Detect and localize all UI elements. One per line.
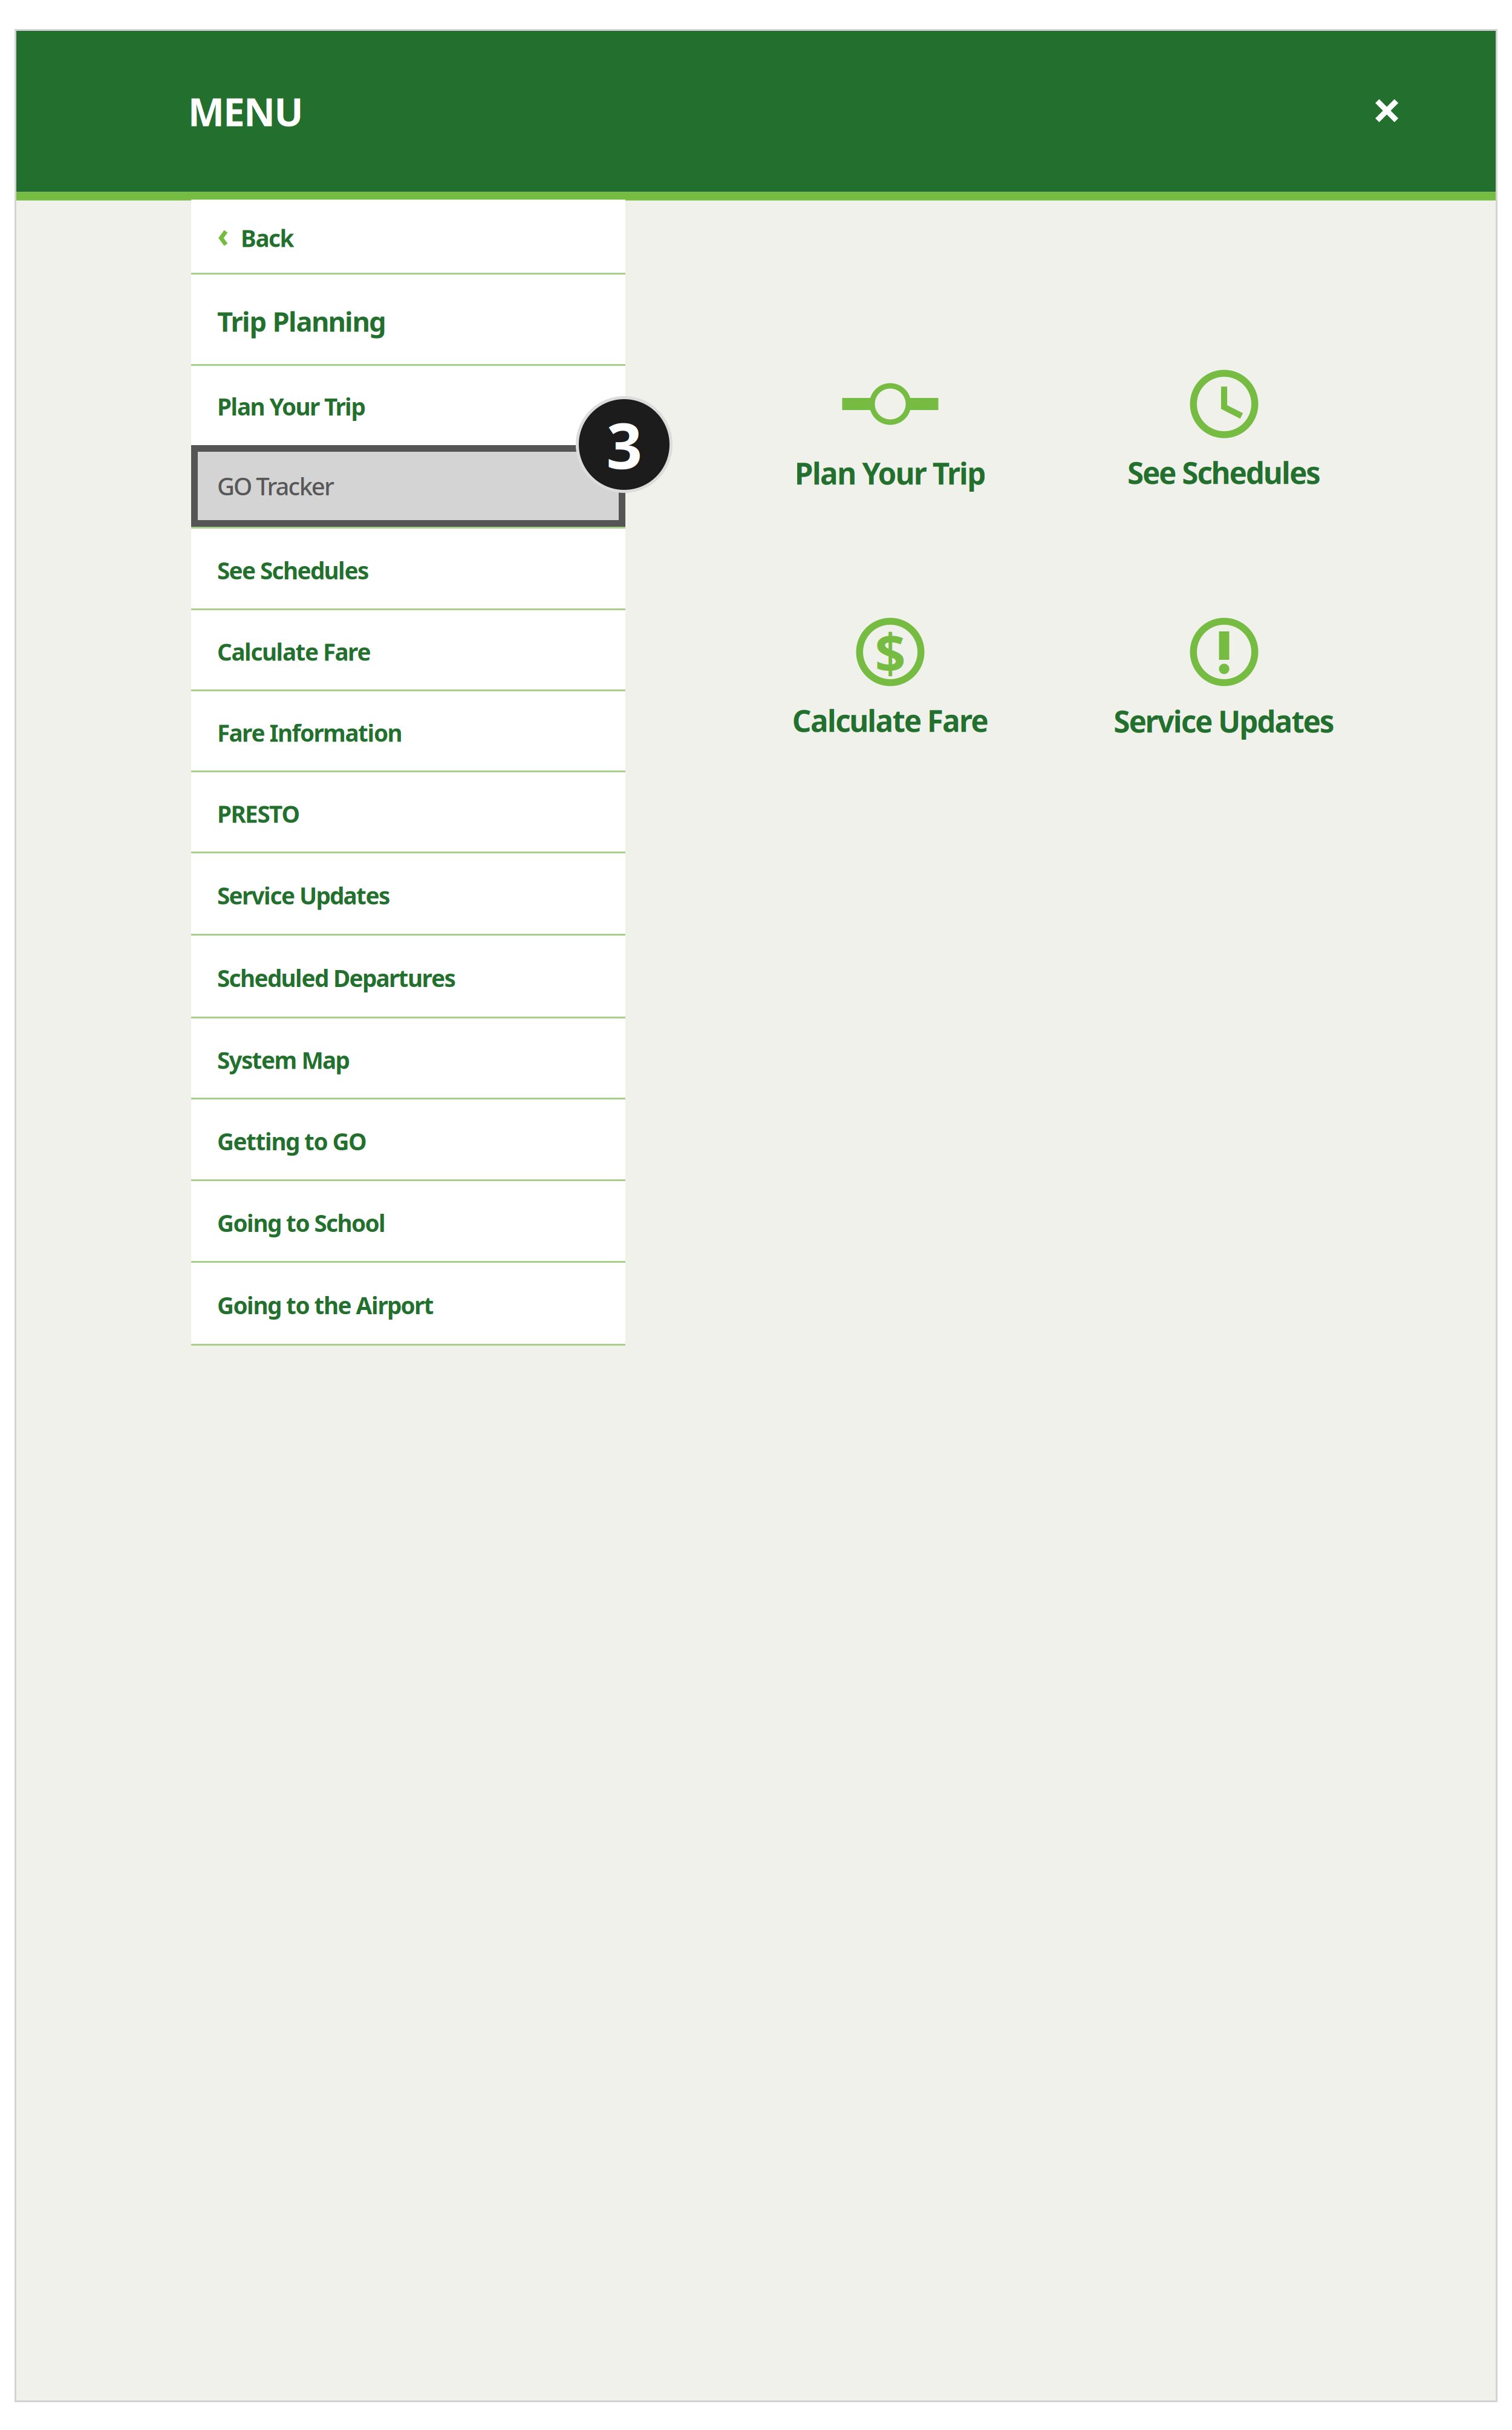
button[interactable]: Plan Your Trip: [733, 331, 1048, 489]
button[interactable]: Getting to GO: [191, 1099, 625, 1181]
button[interactable]: $: [733, 579, 1048, 737]
staticText: Going to School: [217, 1207, 386, 1238]
staticText: Service Updates: [1114, 701, 1335, 741]
staticText: 3: [606, 403, 642, 486]
staticText: See Schedules: [217, 555, 369, 586]
staticText: Trip Planning: [217, 303, 386, 339]
button[interactable]: Scheduled Departures: [191, 936, 625, 1018]
staticText: See Schedules: [1127, 452, 1321, 492]
staticText: PRESTO: [217, 798, 300, 829]
staticText: Scheduled Departures: [217, 962, 456, 993]
button[interactable]: Fare Information: [191, 691, 625, 772]
staticText: Plan Your Trip: [795, 453, 986, 493]
button[interactable]: Plan Your Trip: [191, 366, 625, 445]
button[interactable]: See Schedules: [191, 529, 625, 610]
staticText: GO Tracker: [217, 470, 334, 502]
button[interactable]: Close menu: [1351, 74, 1423, 147]
button[interactable]: System Map: [191, 1018, 625, 1099]
staticText: Calculate Fare: [792, 700, 988, 740]
button[interactable]: Back: [191, 200, 625, 275]
staticText: Fare Information: [217, 717, 402, 748]
staticText: Service Updates: [217, 880, 390, 911]
button[interactable]: Service Updates: [191, 853, 625, 936]
staticText: Back: [241, 222, 294, 253]
staticText: Getting to GO: [217, 1126, 367, 1157]
staticText: System Map: [217, 1044, 350, 1075]
button[interactable]: Service Updates: [1067, 579, 1381, 737]
staticText: Plan Your Trip: [217, 391, 366, 422]
button[interactable]: Going to School: [191, 1181, 625, 1263]
button[interactable]: GO Tracker: [191, 445, 625, 529]
staticText: Calculate Fare: [217, 636, 371, 667]
staticText: Going to the Airport: [217, 1290, 434, 1321]
staticText: MENU: [188, 86, 303, 137]
button[interactable]: Trip Planning: [191, 275, 625, 366]
button[interactable]: Going to the Airport: [191, 1263, 625, 1346]
button[interactable]: PRESTO: [191, 772, 625, 853]
button[interactable]: See Schedules: [1067, 331, 1381, 489]
button[interactable]: MENU: [155, 69, 336, 154]
staticText: $: [875, 616, 906, 688]
button[interactable]: Calculate Fare: [191, 610, 625, 691]
